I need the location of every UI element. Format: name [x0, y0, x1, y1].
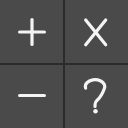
- button[interactable]: Subtract: [0, 64, 64, 128]
- button[interactable]: Help: [64, 64, 128, 128]
- button[interactable]: Multiply: [64, 0, 128, 64]
- button[interactable]: Add: [0, 0, 64, 64]
